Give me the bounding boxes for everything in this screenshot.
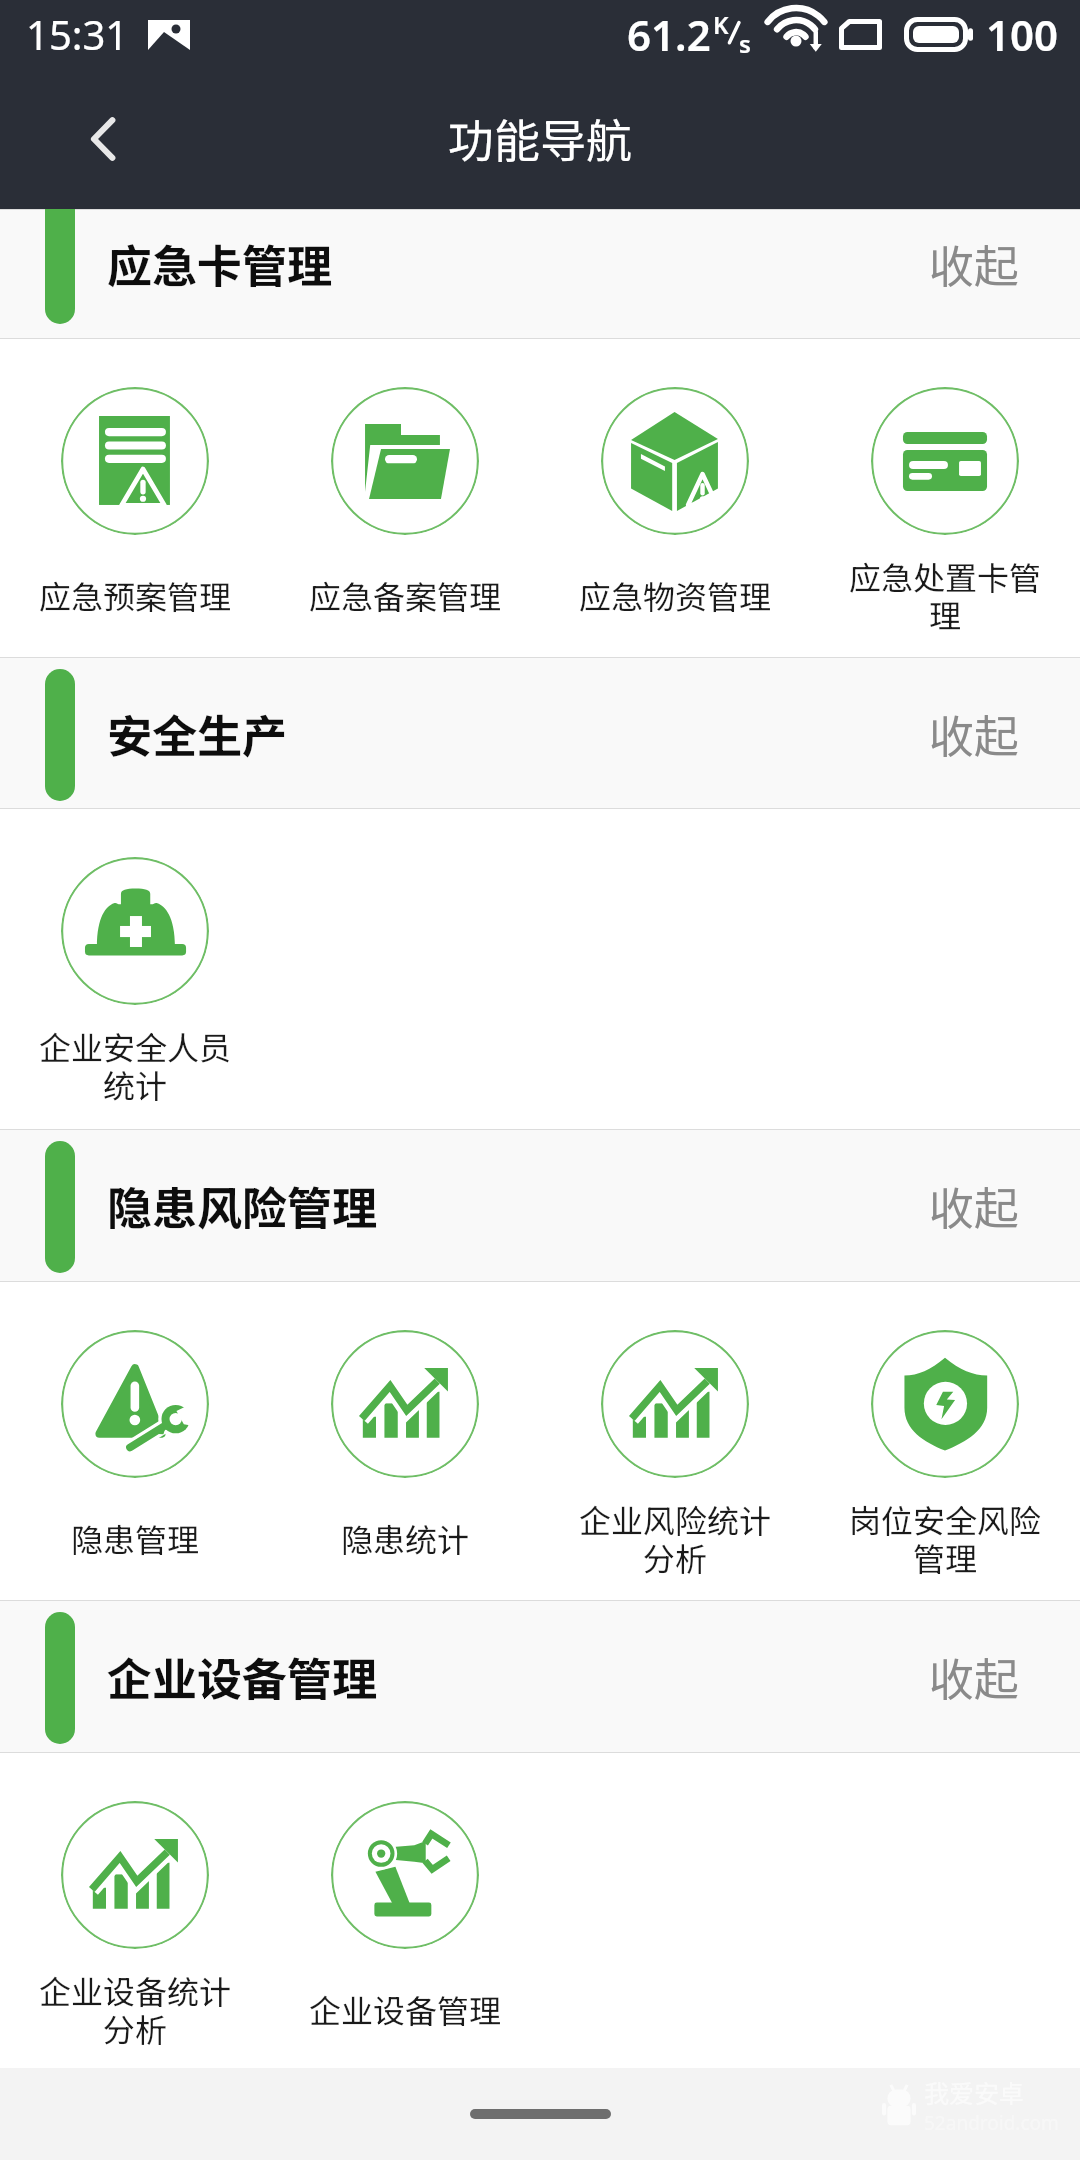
other: 企业设备管理 <box>331 1801 479 1949</box>
staticText: 61.2 <box>627 6 711 63</box>
button[interactable]: 应急预案管理 <box>0 339 270 657</box>
staticText: 收起 <box>929 1644 1020 1709</box>
staticText: 企业风险统计分析 <box>575 1496 775 1581</box>
staticText: 功能导航 <box>448 105 632 172</box>
staticText: 隐患风险管理 <box>107 1173 378 1238</box>
button[interactable]: 隐患管理 <box>0 1282 270 1600</box>
other: 应急处置卡管理 <box>871 387 1019 535</box>
button[interactable]: 应急处置卡管理 <box>810 339 1080 657</box>
staticText: 应急处置卡管理 <box>845 553 1045 638</box>
staticText: 应急预案管理 <box>35 572 235 618</box>
button[interactable]: 应急物资管理 <box>540 339 810 657</box>
button[interactable]: 企业设备统计分析 <box>0 1753 270 2068</box>
other: 企业设备统计分析 <box>61 1801 209 1949</box>
button[interactable]: 隐患风险管理 <box>0 1129 1080 1282</box>
other: 应急备案管理 <box>331 387 479 535</box>
button[interactable]: 岗位安全风险管理 <box>810 1282 1080 1600</box>
button[interactable]: 安全生产 <box>0 657 1080 809</box>
other: 隐患统计 <box>331 1330 479 1478</box>
staticText: 企业设备统计分析 <box>35 1967 235 2052</box>
staticText: 应急物资管理 <box>575 572 775 618</box>
other: 企业安全人员统计 <box>61 857 209 1005</box>
staticText: 收起 <box>929 231 1020 296</box>
staticText: s <box>739 27 751 60</box>
staticText: 应急备案管理 <box>305 572 505 618</box>
button[interactable]: Back <box>44 79 164 199</box>
staticText: 15:31 <box>26 7 129 61</box>
other: 岗位安全风险管理 <box>871 1330 1019 1478</box>
staticText: 收起 <box>929 701 1020 766</box>
other: 应急物资管理 <box>601 387 749 535</box>
staticText: 企业设备管理 <box>107 1644 378 1709</box>
staticText: 企业安全人员统计 <box>35 1023 235 1108</box>
staticText: 隐患统计 <box>305 1515 505 1561</box>
button[interactable]: 企业安全人员统计 <box>0 809 270 1129</box>
other: 隐患管理 <box>61 1330 209 1478</box>
staticText: 100 <box>986 6 1059 63</box>
staticText: 收起 <box>929 1173 1020 1238</box>
button[interactable]: 应急卡管理 <box>0 209 1080 339</box>
button[interactable]: 应急备案管理 <box>270 339 540 657</box>
staticText: 安全生产 <box>107 701 288 766</box>
other: 企业风险统计分析 <box>601 1330 749 1478</box>
staticText: 企业设备管理 <box>305 1986 505 2032</box>
staticText: 应急卡管理 <box>107 231 333 296</box>
button[interactable]: 企业设备管理 <box>270 1753 540 2068</box>
staticText: 岗位安全风险管理 <box>845 1496 1045 1581</box>
staticText: 隐患管理 <box>35 1515 235 1561</box>
other: 应急预案管理 <box>61 387 209 535</box>
button[interactable]: 隐患统计 <box>270 1282 540 1600</box>
staticText: K <box>713 8 729 41</box>
button[interactable]: 企业设备管理 <box>0 1600 1080 1753</box>
button[interactable]: 企业风险统计分析 <box>540 1282 810 1600</box>
